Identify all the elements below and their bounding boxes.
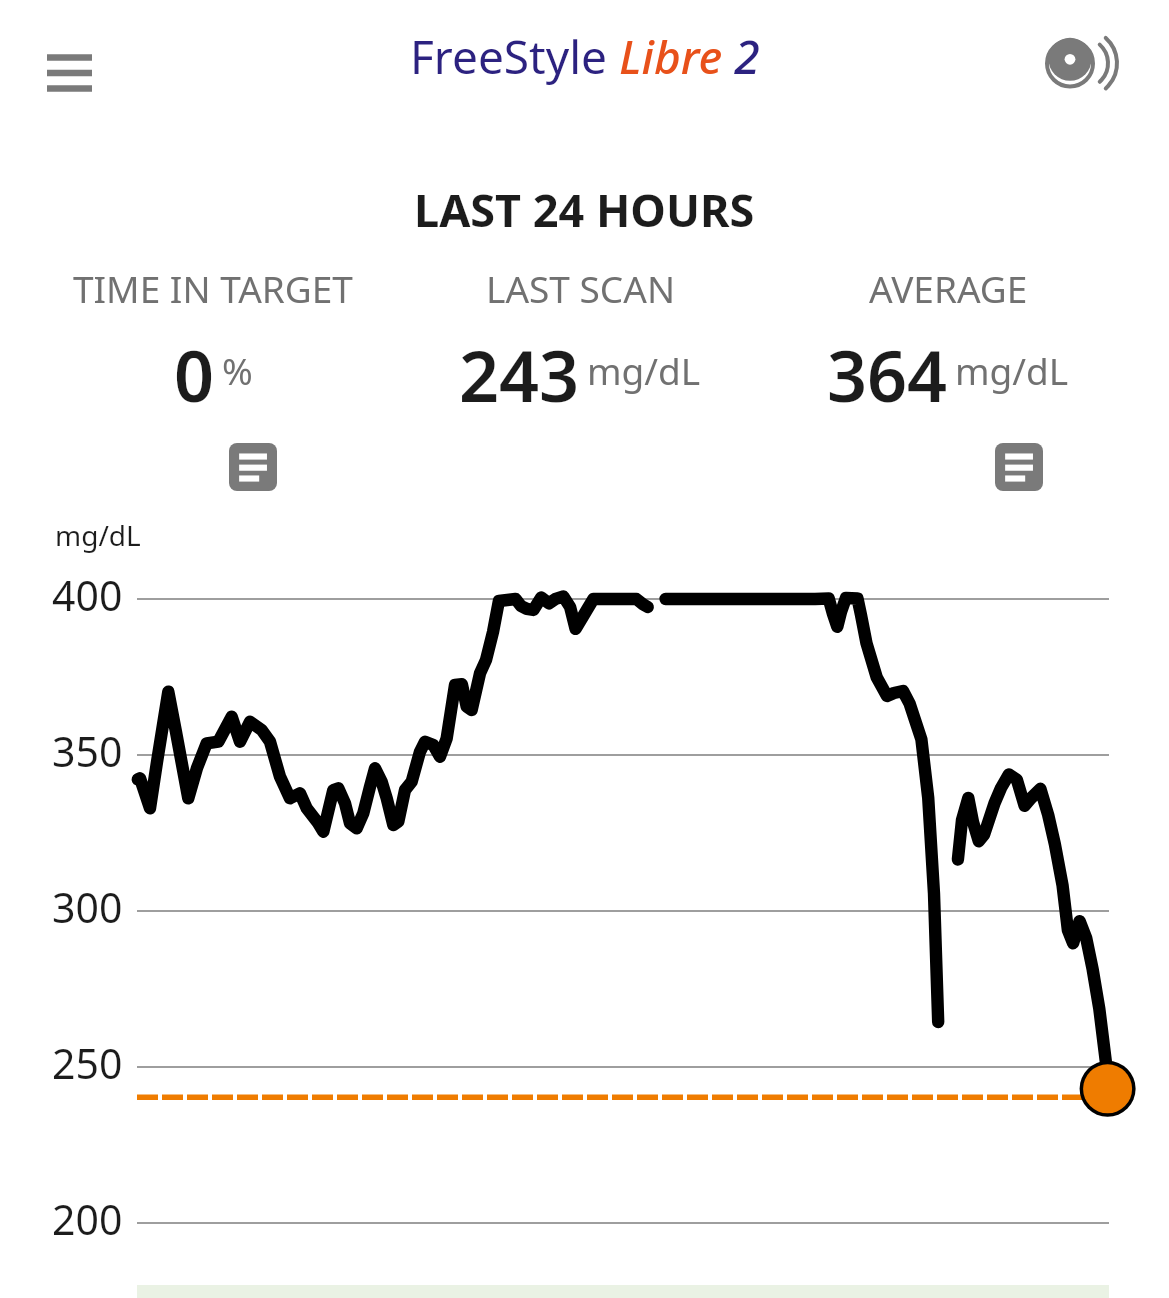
staticText: 200 bbox=[52, 1191, 123, 1247]
staticText: 300 bbox=[52, 879, 123, 935]
staticText: LAST 24 HOURS bbox=[414, 179, 755, 240]
staticText: 400 bbox=[52, 567, 123, 623]
button[interactable]: Report details bbox=[229, 443, 277, 491]
staticText: AVERAGE bbox=[869, 263, 1028, 313]
staticText: mg/dL bbox=[587, 345, 701, 395]
button[interactable]: Scan a New Sensor bbox=[1030, 18, 1140, 108]
staticText: mg/dL bbox=[55, 516, 141, 554]
staticText: 243 bbox=[459, 327, 580, 422]
staticText: % bbox=[222, 345, 253, 395]
staticText: 250 bbox=[52, 1035, 123, 1091]
button[interactable]: Menu bbox=[24, 20, 116, 106]
staticText: 350 bbox=[52, 723, 123, 779]
staticText: FreeStyle Libre 2 bbox=[410, 25, 760, 88]
staticText: LAST SCAN bbox=[486, 263, 675, 313]
staticText: TIME IN TARGET bbox=[73, 263, 353, 313]
button[interactable]: Report details bbox=[995, 443, 1043, 491]
staticText: mg/dL bbox=[955, 345, 1069, 395]
staticText: 364 bbox=[827, 327, 948, 422]
staticText: 0 bbox=[174, 327, 215, 422]
